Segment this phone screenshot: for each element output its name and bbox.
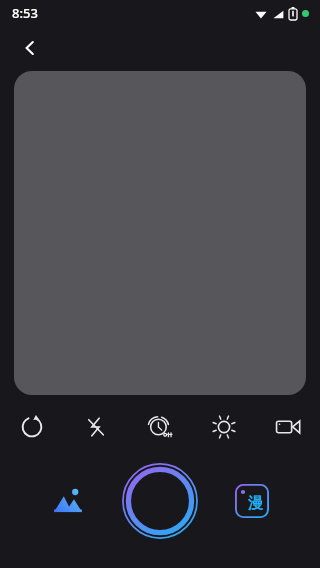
button[interactable]: Timer off xyxy=(128,405,192,449)
button[interactable]: Flash off xyxy=(64,405,128,449)
button[interactable]: Manga filter xyxy=(228,477,276,525)
button[interactable]: Camera preview xyxy=(14,71,306,395)
staticText: 漫 xyxy=(248,494,263,513)
button[interactable]: Rotate xyxy=(0,405,64,449)
button[interactable]: Gallery xyxy=(44,477,92,525)
staticText: 8:53 xyxy=(12,4,38,22)
button[interactable]: Shutter xyxy=(121,462,199,540)
button[interactable]: Back xyxy=(10,28,50,68)
button[interactable]: Brightness xyxy=(192,405,256,449)
button[interactable]: Video mode xyxy=(256,405,320,449)
